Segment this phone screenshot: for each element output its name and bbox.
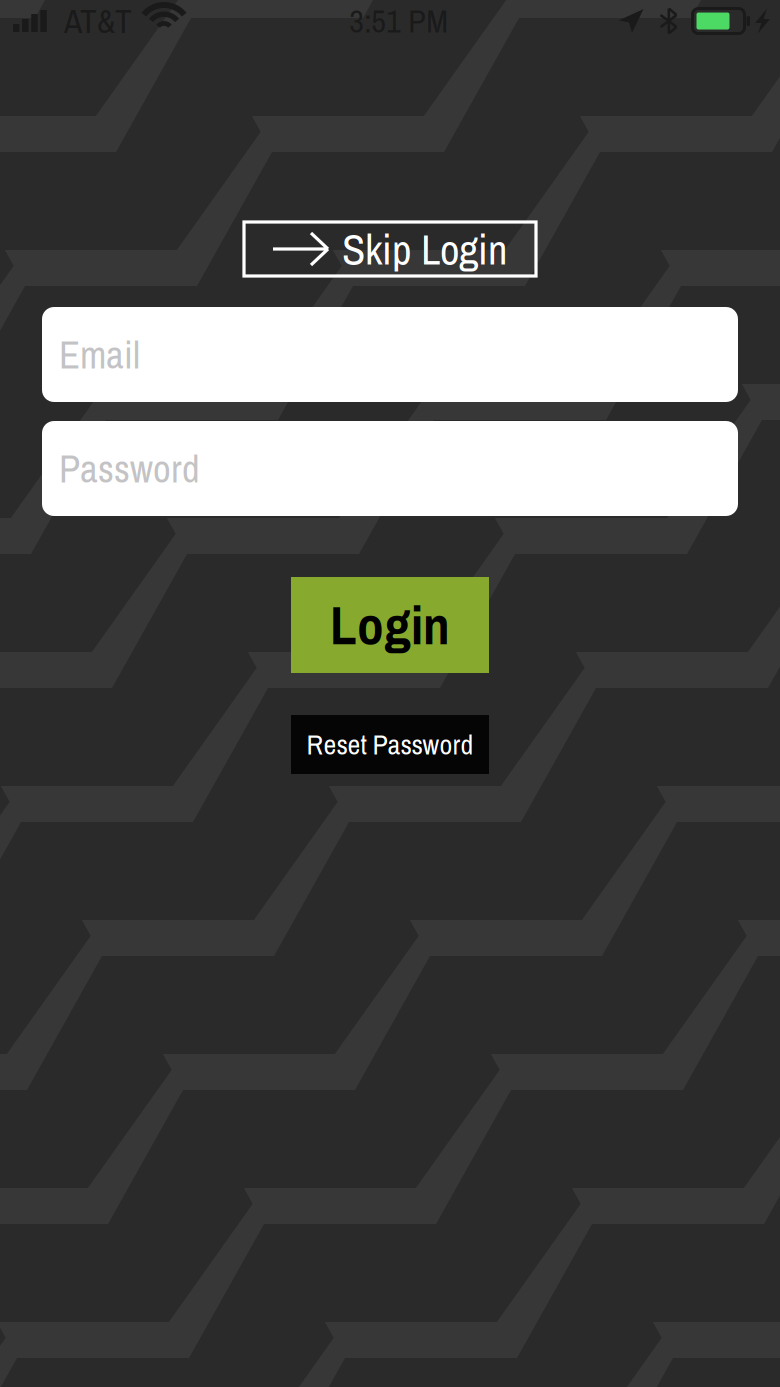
button[interactable]: Email [42,307,738,402]
staticText: 3:51 PM [349,0,448,42]
button[interactable]: Login [291,577,489,673]
button[interactable]: Password [42,421,738,516]
button[interactable]: Skip Login [244,222,536,276]
staticText: Skip Login [342,220,507,278]
staticText: Login [330,589,450,661]
staticText: Reset Password [306,726,473,763]
staticText: Email [59,328,140,381]
staticText: Password [59,442,200,495]
staticText: AT&T [64,0,132,43]
button[interactable]: Reset Password [291,715,489,774]
